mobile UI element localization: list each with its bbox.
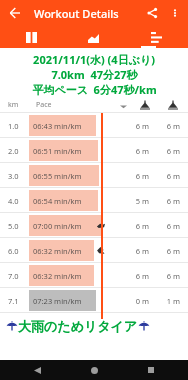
staticText: 4.0 [8, 196, 28, 206]
staticText: 06:55 min/km [33, 171, 82, 181]
staticText: 1 m [160, 296, 180, 306]
staticText: 7.1 [8, 296, 28, 306]
button[interactable]: Chart [62, 26, 125, 48]
staticText: 06:51 min/km [33, 146, 82, 156]
staticText: 7.0km 47分27秒 [51, 67, 138, 82]
staticText: 07:23 min/km [33, 296, 82, 306]
button[interactable]: 6.0 [0, 238, 188, 263]
staticText: 06:32 min/km [33, 271, 82, 281]
staticText: 7.0 [8, 271, 28, 281]
button[interactable]: Back [6, 4, 24, 22]
staticText: 5 m [129, 196, 149, 206]
button[interactable]: Home [87, 363, 101, 377]
staticText: 6 m [160, 171, 180, 181]
button[interactable]: 3.0 [0, 163, 188, 188]
staticText: 6 m [160, 121, 180, 131]
staticText: 06:54 min/km [33, 196, 82, 206]
staticText: 6 m [129, 121, 149, 131]
staticText: 6 m [160, 221, 180, 231]
staticText: Workout Details [34, 6, 119, 21]
staticText: 6.0 [8, 246, 28, 256]
staticText: 6 m [129, 146, 149, 156]
button[interactable]: 4.0 [0, 188, 188, 213]
button[interactable]: Laps [125, 26, 188, 48]
staticText: 大雨のためリタイア [18, 318, 138, 334]
staticText: 06:43 min/km [33, 121, 82, 131]
button[interactable]: Back [30, 363, 44, 377]
staticText: 07:00 min/km [33, 221, 82, 231]
staticText: 平均ペース 6分47秒/km [32, 82, 157, 97]
staticText: 6 m [129, 221, 149, 231]
staticText: 6 m [129, 271, 149, 281]
staticText: 5.0 [8, 221, 28, 231]
button[interactable]: 2.0 [0, 138, 188, 163]
staticText: 0 m [129, 296, 149, 306]
button[interactable]: More options [167, 5, 183, 21]
staticText: 6 m [160, 271, 180, 281]
button[interactable]: 7.1 [0, 288, 188, 313]
button[interactable]: 5.0 [0, 213, 188, 238]
staticText: 6 m [160, 246, 180, 256]
button[interactable]: Recent apps [144, 363, 158, 377]
staticText: 1.0 [8, 121, 28, 131]
staticText: 6 m [129, 171, 149, 181]
button[interactable]: Share [143, 4, 161, 22]
staticText: 2021/11/1(水) (4日ぶり) [33, 52, 155, 67]
button[interactable]: 1.0 [0, 113, 188, 138]
staticText: 3.0 [8, 171, 28, 181]
staticText: 6 m [160, 146, 180, 156]
staticText: 2.0 [8, 146, 28, 156]
staticText: Pace [36, 100, 52, 110]
staticText: km [8, 100, 19, 110]
staticText: 06:32 min/km [33, 246, 82, 256]
button[interactable]: Map [0, 26, 62, 48]
staticText: 6 m [129, 246, 149, 256]
staticText: 6 m [160, 196, 180, 206]
button[interactable]: 7.0 [0, 263, 188, 288]
